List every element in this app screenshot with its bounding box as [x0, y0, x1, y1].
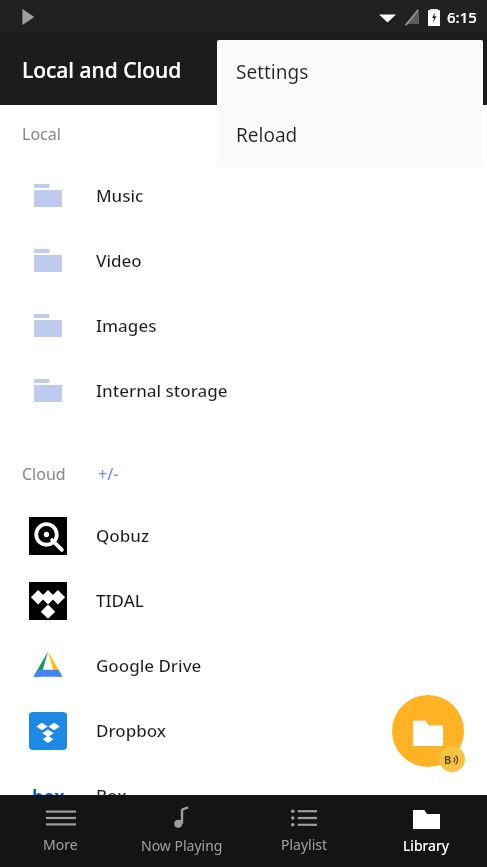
staticText: Cloud [22, 463, 66, 485]
staticText: Music [96, 184, 144, 207]
staticText: Local and Cloud [22, 56, 182, 85]
staticText: Playlist [281, 835, 328, 854]
button[interactable]: Settings [217, 40, 483, 103]
staticText: Images [96, 314, 157, 337]
staticText: box [32, 784, 65, 809]
staticText: TIDAL [96, 589, 144, 612]
button[interactable]: Browse folders [392, 695, 464, 767]
button[interactable]: More [0, 795, 121, 867]
button[interactable]: Music [0, 163, 487, 228]
button[interactable]: Playlist [243, 795, 365, 867]
staticText: Video [96, 249, 142, 272]
button[interactable]: TIDAL [0, 568, 487, 633]
button[interactable]: Qobuz [0, 503, 487, 568]
button[interactable]: Now Playing [121, 795, 243, 867]
button[interactable]: Library [365, 795, 487, 867]
button[interactable]: Dropbox [0, 698, 487, 763]
button[interactable]: Video [0, 228, 487, 293]
staticText: Internal storage [96, 379, 228, 402]
button[interactable]: Reload [217, 103, 483, 166]
button[interactable]: box [0, 763, 487, 828]
staticText: Dropbox [96, 719, 167, 742]
button[interactable]: Google Drive [0, 633, 487, 698]
staticText: Library [403, 836, 449, 855]
staticText: Box [96, 784, 127, 807]
staticText: Now Playing [141, 836, 223, 855]
staticText: 6:15 [447, 7, 477, 27]
staticText: Google Drive [96, 654, 202, 677]
staticText: Settings [236, 59, 309, 85]
staticText: Reload [236, 122, 298, 148]
staticText: Local [22, 123, 61, 145]
staticText: +/- [98, 463, 119, 485]
staticText: B [444, 752, 452, 767]
button[interactable]: +/- [96, 459, 121, 489]
staticText: Qobuz [96, 524, 150, 547]
button[interactable]: Images [0, 293, 487, 358]
staticText: More [43, 835, 78, 854]
button[interactable]: Internal storage [0, 358, 487, 423]
